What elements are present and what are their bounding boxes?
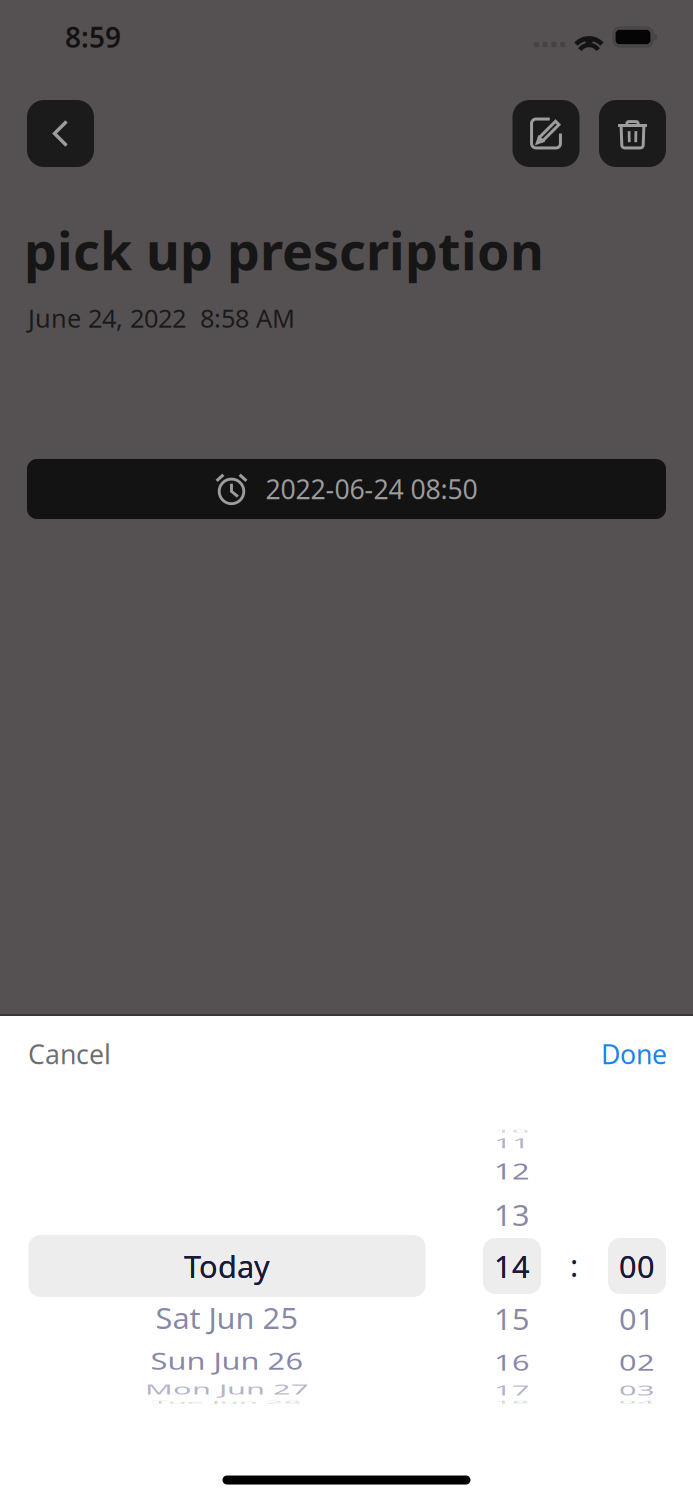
staticText: Cancel <box>28 1036 111 1072</box>
staticText: 00 <box>619 1246 655 1286</box>
staticText: Sun Jun 26 <box>150 1341 303 1381</box>
button[interactable]: Done <box>547 1031 667 1077</box>
staticText: 18 <box>494 1382 530 1422</box>
staticText: 03 <box>619 1370 655 1410</box>
staticText: : <box>570 1245 578 1285</box>
staticText: 8:59 <box>65 18 121 56</box>
staticText: 04 <box>619 1382 655 1422</box>
staticText: 02 <box>619 1342 655 1382</box>
staticText: 00 <box>619 1246 655 1286</box>
staticText: 14 <box>494 1246 530 1286</box>
staticText: Sat Jun 25 <box>155 1298 298 1338</box>
staticText: 11 <box>494 1123 530 1163</box>
staticText: 14 <box>494 1246 530 1286</box>
staticText: Done <box>601 1036 667 1072</box>
staticText: 16 <box>494 1342 530 1382</box>
staticText: June 24, 2022 8:58 AM <box>28 301 295 335</box>
staticText: 17 <box>494 1370 530 1410</box>
button[interactable]: Back <box>27 100 94 167</box>
staticText: Mon Jun 27 <box>145 1369 309 1409</box>
button[interactable]: Cancel <box>28 1031 148 1077</box>
staticText: 01 <box>619 1299 655 1339</box>
staticText: Tue Jun 28 <box>152 1382 302 1422</box>
staticText: 10 <box>494 1111 530 1151</box>
staticText: 13 <box>494 1195 530 1235</box>
staticText: Today <box>184 1246 270 1286</box>
staticText: pick up prescription <box>24 215 544 285</box>
button[interactable]: Delete <box>599 100 666 167</box>
staticText: 2022-06-24 08:50 <box>265 471 477 507</box>
button[interactable]: Edit <box>512 100 579 167</box>
staticText: 12 <box>494 1151 530 1191</box>
staticText: 15 <box>494 1299 530 1339</box>
staticText: Today <box>184 1246 270 1286</box>
